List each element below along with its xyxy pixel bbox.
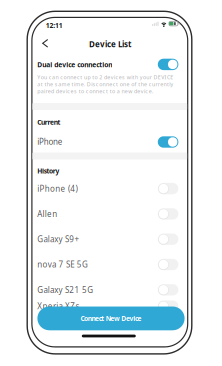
staticText: Galaxy S21 5G [37, 284, 93, 295]
staticText: 12:11 [46, 21, 63, 30]
staticText: Device List [89, 39, 131, 49]
button[interactable]: Connect New Device [37, 306, 185, 330]
staticText: History [37, 167, 59, 175]
staticText: You can connect up to 2 devices with you… [37, 74, 173, 81]
button[interactable]: Back [40, 36, 51, 50]
button[interactable]: Xperia XZs [158, 300, 178, 312]
staticText: iPhone [37, 136, 63, 147]
button[interactable]: iPhone connected [158, 136, 178, 148]
button[interactable]: Dual device connection [158, 59, 178, 70]
staticText: Dual device connection [37, 60, 112, 69]
staticText: Current [37, 118, 60, 127]
staticText: Allen [37, 209, 57, 219]
staticText: Xperia XZs [37, 301, 79, 311]
button[interactable]: nova 7 SE 5G [158, 259, 178, 270]
button[interactable]: iPhone (4) [158, 183, 178, 194]
button[interactable]: Galaxy S9+ [158, 233, 178, 245]
button[interactable]: Allen [158, 208, 178, 220]
staticText: Galaxy S9+ [37, 234, 79, 244]
staticText: at the same time. Disconnect one of the … [37, 81, 174, 88]
staticText: iPhone (4) [37, 183, 77, 194]
staticText: nova 7 SE 5G [37, 259, 88, 270]
button[interactable]: Galaxy S21 5G [158, 284, 178, 295]
staticText: Connect New Device [80, 314, 142, 323]
staticText: paired devices to connect to a new devic… [37, 88, 153, 95]
